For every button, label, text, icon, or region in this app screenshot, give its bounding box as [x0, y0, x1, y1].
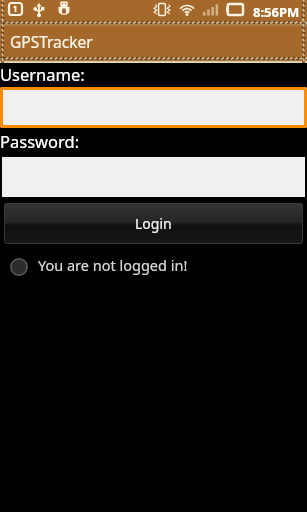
- staticText: Username:: [0, 63, 85, 85]
- staticText: 8:56PM: [253, 3, 300, 21]
- staticText: You are not logged in!: [38, 255, 188, 275]
- button[interactable]: Login: [4, 203, 303, 244]
- button[interactable]: [0, 87, 307, 128]
- staticText: Password:: [0, 130, 80, 152]
- staticText: GPSTracker: [10, 31, 93, 52]
- staticText: Login: [135, 214, 172, 233]
- button[interactable]: You are not logged in!: [0, 251, 307, 278]
